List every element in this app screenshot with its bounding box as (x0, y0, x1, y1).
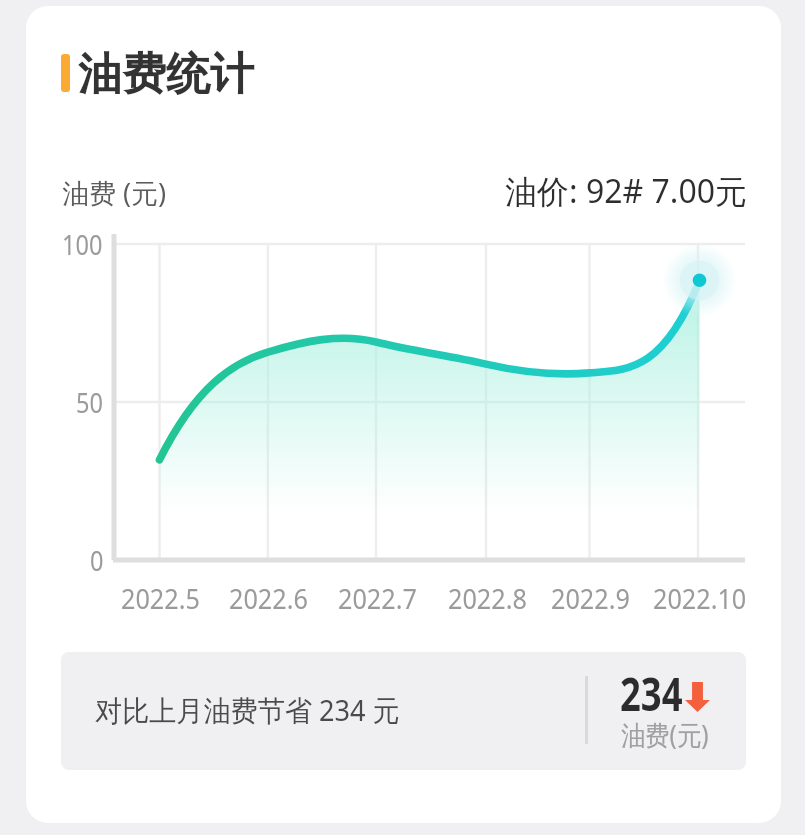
staticText: 2022.5 (121, 579, 200, 617)
staticText: 油费(元) (621, 716, 709, 753)
staticText: 2022.6 (229, 579, 308, 617)
staticText: 2022.10 (653, 579, 747, 617)
staticText: 50 (76, 383, 104, 421)
staticText: 234 (620, 661, 683, 725)
staticText: 油费统计 (78, 47, 254, 102)
staticText: 对比上月油费节省 234 元 (95, 690, 400, 730)
staticText: 油价: 92# 7.00元 (505, 169, 747, 213)
staticText: 100 (62, 225, 103, 263)
staticText: 油费 (元) (62, 174, 167, 211)
other: 油费下降 (685, 682, 710, 712)
staticText: 2022.8 (448, 579, 527, 617)
staticText: 2022.7 (338, 579, 417, 617)
button[interactable]: 对比上月油费节省 234 元 (61, 652, 746, 770)
staticText: 2022.9 (551, 579, 630, 617)
staticText: 0 (90, 541, 104, 579)
